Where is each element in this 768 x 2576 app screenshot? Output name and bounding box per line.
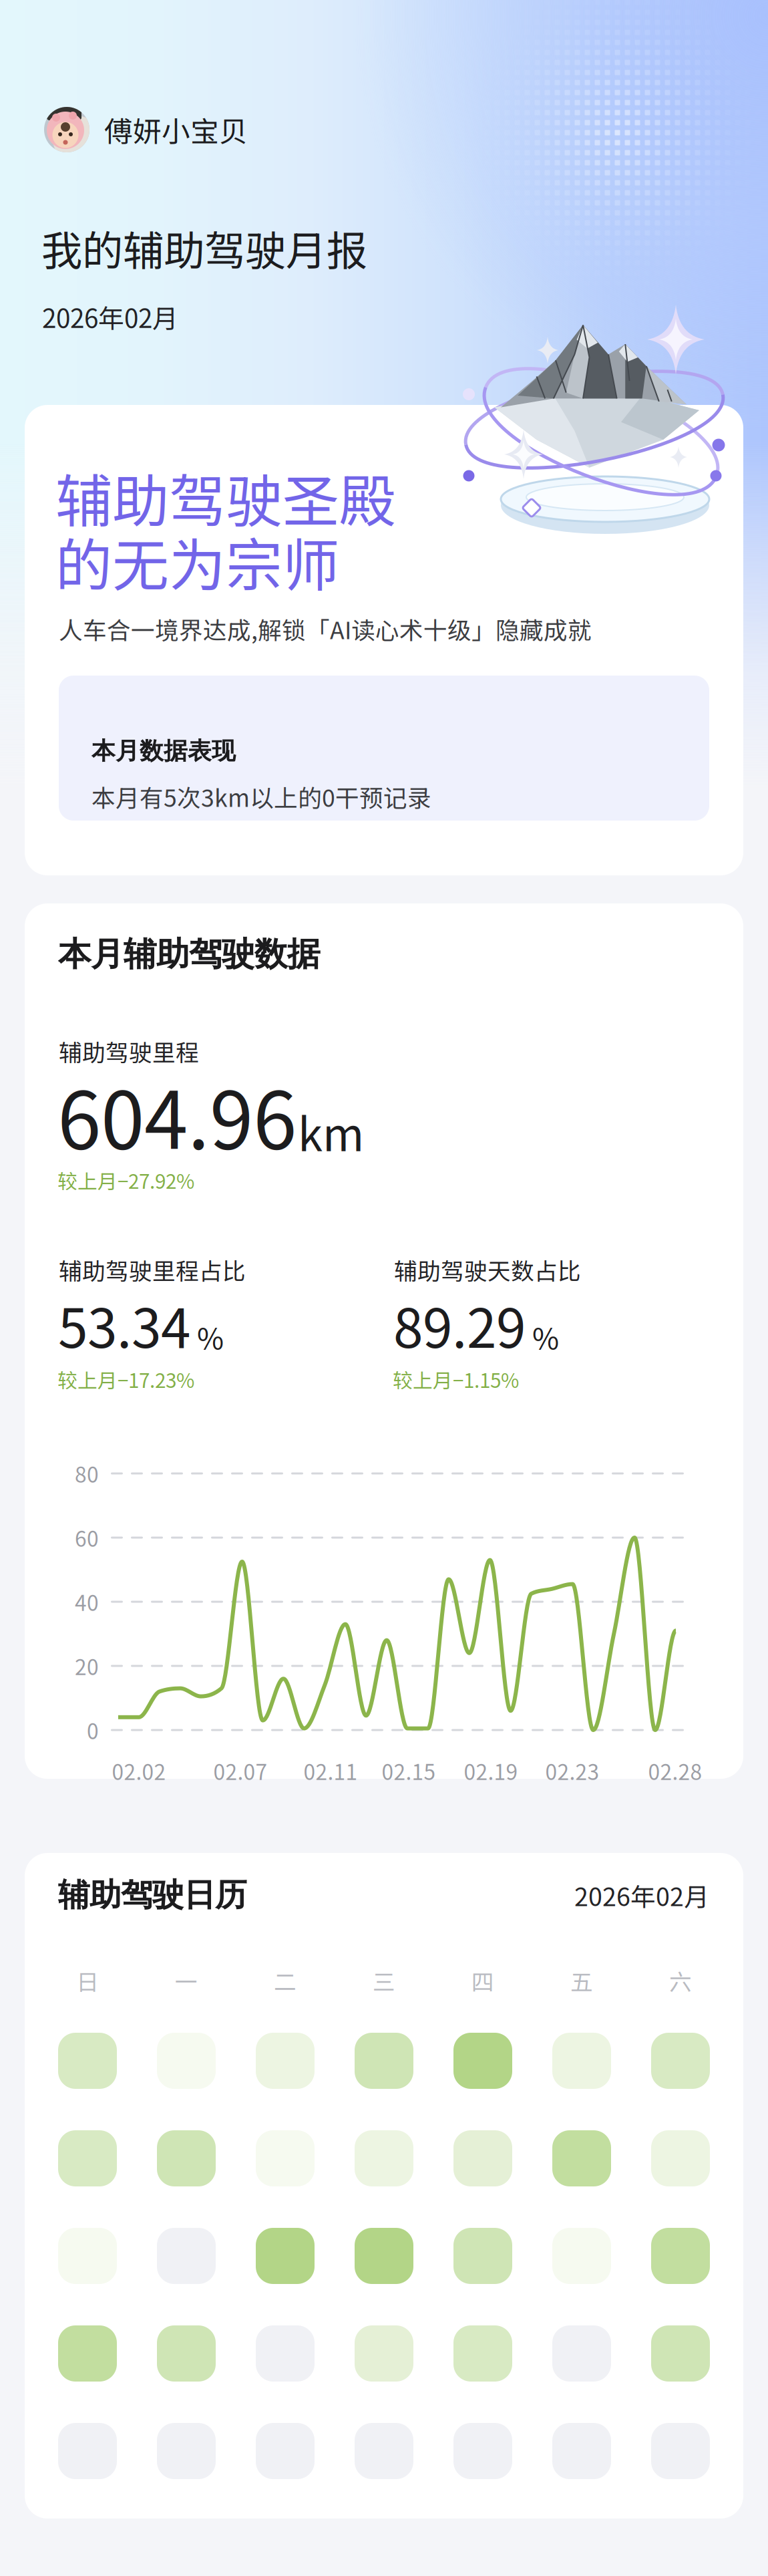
staticText: 我的辅助驾驶月报 [41,218,367,278]
staticText: 02.07 [213,1755,267,1786]
staticText: 02.15 [382,1755,436,1786]
staticText: 日 [76,1964,99,1997]
staticText: 0 [87,1715,99,1745]
staticText: 辅助驾驶日历 [58,1875,246,1915]
staticText: 较上月−17.23% [57,1365,194,1394]
staticText: % [532,1316,559,1358]
staticText: 的无为宗师 [55,520,339,602]
staticText: 02.23 [545,1755,599,1786]
staticText: 02.28 [648,1755,702,1786]
staticText: 较上月−27.92% [57,1166,194,1194]
staticText: 三 [373,1964,395,1997]
staticText: 2026年02月 [574,1877,709,1913]
staticText: 六 [669,1964,692,1997]
staticText: 辅助驾驶里程占比 [59,1253,246,1286]
staticText: 辅助驾驶圣殿 [55,456,396,538]
staticText: 89.29 [393,1286,526,1363]
staticText: 20 [75,1651,99,1681]
staticText: 傅妍小宝贝 [104,109,248,150]
staticText: 四 [471,1964,494,1997]
staticText: 二 [274,1964,297,1997]
staticText: 02.02 [112,1755,166,1786]
staticText: 40 [75,1586,99,1617]
staticText: 较上月−1.15% [393,1365,519,1394]
staticText: 辅助驾驶里程 [59,1034,199,1068]
staticText: 53.34 [58,1286,190,1363]
staticText: % [197,1316,224,1358]
staticText: 本月数据表现 [91,736,236,766]
staticText: 本月有5次3km以上的0干预记录 [91,779,431,814]
staticText: 02.19 [464,1755,518,1786]
staticText: 02.11 [304,1755,358,1786]
staticText: 2026年02月 [42,298,178,335]
staticText: 80 [75,1458,99,1489]
staticText: 人车合一境界达成,解锁「AI读心术十级」隐藏成就 [59,612,592,646]
staticText: 604.96 [57,1058,297,1172]
staticText: 本月辅助驾驶数据 [58,933,320,975]
staticText: 60 [75,1522,99,1553]
staticText: 一 [175,1964,198,1997]
staticText: 辅助驾驶天数占比 [394,1253,581,1286]
button[interactable]: 傅妍小宝贝 [44,106,331,154]
staticText: km [298,1099,364,1164]
staticText: 五 [570,1964,593,1997]
